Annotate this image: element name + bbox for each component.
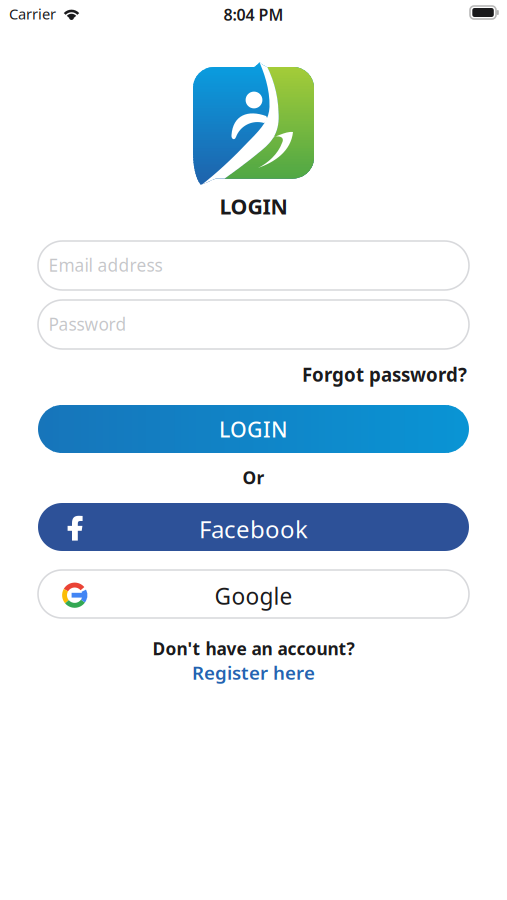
staticText: Carrier xyxy=(9,4,56,23)
staticText: Email address xyxy=(48,253,162,276)
button[interactable]: Facebook xyxy=(38,503,469,551)
staticText: Forgot password? xyxy=(302,362,467,387)
staticText: LOGIN xyxy=(219,192,287,220)
button[interactable]: Forgot password? xyxy=(36,362,467,387)
staticText: Google xyxy=(214,581,292,611)
staticText: Or xyxy=(242,466,264,489)
button[interactable]: Google xyxy=(38,570,469,618)
staticText: Register here xyxy=(192,660,315,685)
staticText: Password xyxy=(48,312,126,335)
staticText: Facebook xyxy=(199,513,308,545)
button[interactable]: Register here xyxy=(0,660,507,685)
staticText: Don't have an account? xyxy=(152,637,354,660)
staticText: 8:04 PM xyxy=(223,4,283,25)
button[interactable]: Password xyxy=(38,300,469,349)
button[interactable]: Email address xyxy=(38,241,469,290)
staticText: LOGIN xyxy=(219,415,288,443)
button[interactable]: LOGIN xyxy=(38,405,469,453)
